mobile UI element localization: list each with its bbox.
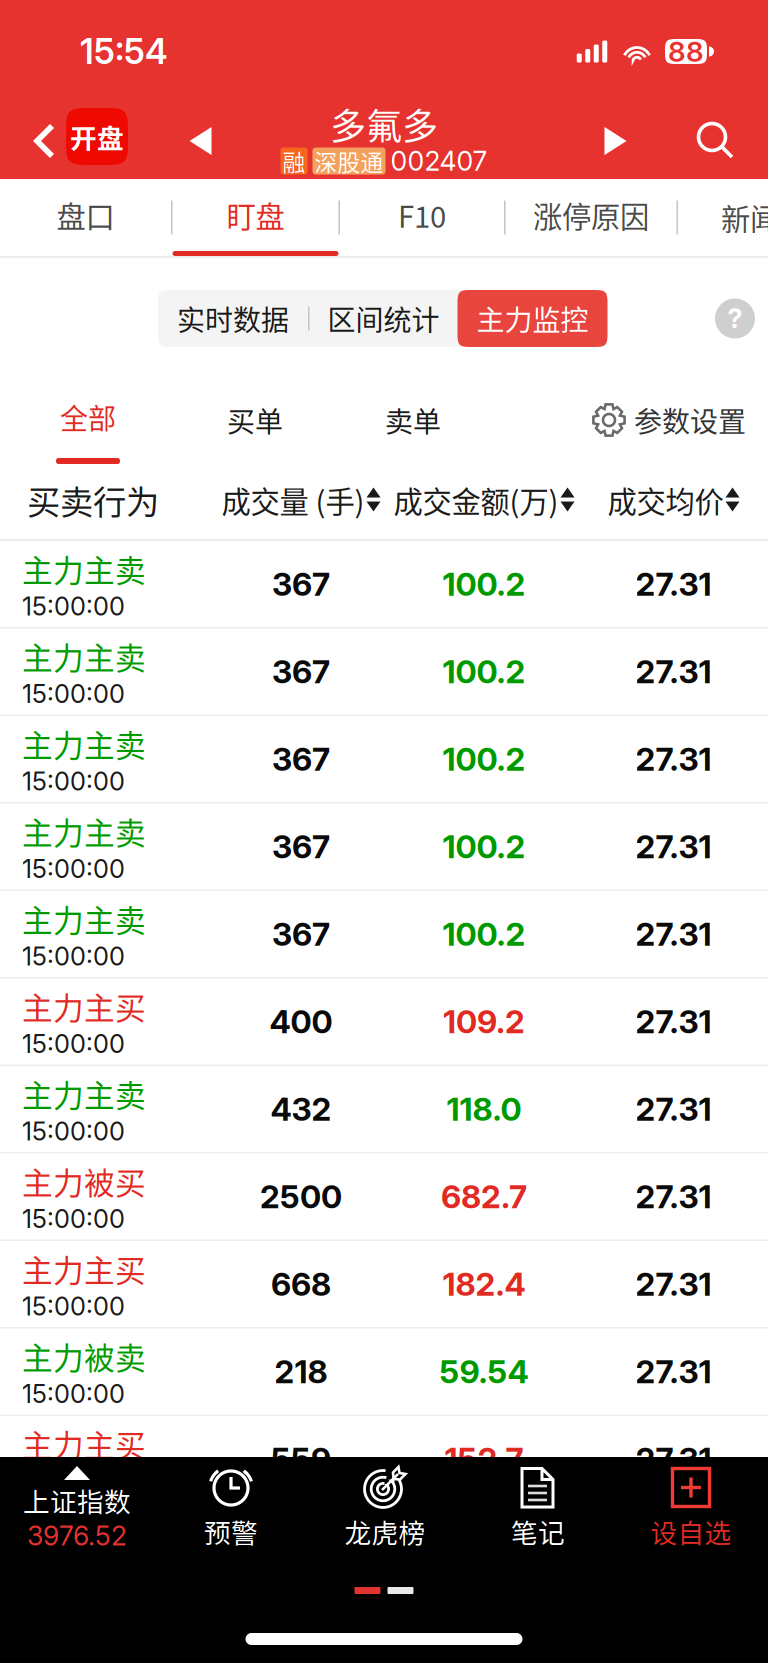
staticText: 15:00:00 xyxy=(22,678,125,709)
button[interactable]: 参数设置 xyxy=(592,376,768,464)
staticText: 龙虎榜 xyxy=(344,1512,425,1551)
button[interactable]: 新闻 xyxy=(667,179,768,256)
button[interactable]: 笔记 xyxy=(462,1465,614,1561)
staticText: 27.31 xyxy=(635,915,711,953)
button[interactable]: 卖单 xyxy=(334,376,492,464)
staticText: 668 xyxy=(271,1265,331,1303)
staticText: 盯盘 xyxy=(226,194,284,236)
staticText: 主力被买 xyxy=(22,1159,146,1203)
staticText: 682.7 xyxy=(441,1177,527,1216)
staticText: 367 xyxy=(272,827,330,866)
button[interactable]: 主力被买 xyxy=(0,1153,768,1241)
staticText: 主力主买 xyxy=(22,1421,146,1466)
staticText: 15:00:00 xyxy=(22,1116,125,1147)
button[interactable]: 主力主买 xyxy=(0,1416,768,1503)
staticText: 27.31 xyxy=(635,565,711,603)
staticText: 367 xyxy=(272,652,330,691)
button[interactable]: 主力主卖 xyxy=(0,541,768,628)
staticText: 118.0 xyxy=(446,1090,521,1128)
staticText: 买单 xyxy=(227,400,283,440)
button[interactable]: 主力监控 xyxy=(457,290,607,347)
button[interactable]: 区间统计 xyxy=(309,290,457,347)
button[interactable]: 主力主卖 xyxy=(0,716,768,803)
button[interactable]: 盯盘 xyxy=(172,179,338,256)
staticText: 主力监控 xyxy=(476,298,588,339)
staticText: 15:00:00 xyxy=(22,1291,125,1322)
button[interactable]: Back xyxy=(20,101,66,181)
staticText: 主力主卖 xyxy=(22,896,146,941)
staticText: 涨停原因 xyxy=(533,194,649,236)
staticText: 卖单 xyxy=(385,400,441,440)
staticText: 深股通 xyxy=(314,145,383,177)
staticText: 15:00:00 xyxy=(22,766,125,797)
staticText: 100.2 xyxy=(442,827,525,866)
button[interactable]: 成交量 (手) xyxy=(213,463,389,537)
button[interactable]: 全部 xyxy=(0,376,176,464)
button[interactable]: F10 xyxy=(340,179,504,256)
staticText: 15:00:00 xyxy=(22,1028,125,1059)
staticText: 15:00:00 xyxy=(22,853,125,884)
button[interactable]: 成交金额(万) xyxy=(389,463,579,537)
button[interactable]: 涨停原因 xyxy=(505,179,676,256)
staticText: ? xyxy=(727,302,742,335)
staticText: 15:54 xyxy=(80,30,168,72)
staticText: F10 xyxy=(398,194,446,236)
staticText: 367 xyxy=(272,915,330,953)
staticText: 参数设置 xyxy=(634,400,746,440)
staticText: 432 xyxy=(270,1090,331,1128)
staticText: 主力主卖 xyxy=(22,721,146,766)
staticText: 182.4 xyxy=(442,1265,525,1303)
staticText: 100.2 xyxy=(442,915,525,953)
button[interactable]: 主力主卖 xyxy=(0,803,768,891)
staticText: 上证指数 xyxy=(23,1481,131,1520)
staticText: 400 xyxy=(269,1002,332,1041)
button[interactable]: Previous stock xyxy=(171,101,229,181)
staticText: 设自选 xyxy=(650,1512,731,1551)
staticText: 主力主卖 xyxy=(22,1071,146,1116)
staticText: 15:00:00 xyxy=(22,1378,125,1409)
staticText: 100.2 xyxy=(442,740,525,778)
staticText: 88 xyxy=(668,35,704,68)
button[interactable]: 成交均价 xyxy=(579,463,768,537)
staticText: 3976.52 xyxy=(27,1520,127,1552)
button[interactable]: 主力主卖 xyxy=(0,628,768,716)
button[interactable]: 龙虎榜 xyxy=(308,1465,462,1561)
button[interactable]: 盘口 xyxy=(0,179,171,256)
button[interactable]: 实时数据 xyxy=(158,290,308,347)
button[interactable]: 主力主卖 xyxy=(0,891,768,978)
staticText: 27.31 xyxy=(635,1090,711,1128)
button[interactable]: 买单 xyxy=(176,376,334,464)
button[interactable]: 主力主卖 xyxy=(0,1066,768,1153)
staticText: 15:00:00 xyxy=(22,591,125,622)
staticText: 主力主卖 xyxy=(22,809,146,853)
button[interactable]: 主力主买 xyxy=(0,1241,768,1328)
button[interactable]: 上证指数 xyxy=(0,1465,154,1561)
staticText: 主力主卖 xyxy=(22,634,146,678)
staticText: 主力主买 xyxy=(22,984,146,1028)
button[interactable]: 预警 xyxy=(154,1465,308,1561)
staticText: 区间统计 xyxy=(327,298,439,339)
button[interactable]: 主力主买 xyxy=(0,978,768,1066)
staticText: 笔记 xyxy=(511,1512,565,1551)
staticText: 27.31 xyxy=(635,827,711,866)
staticText: 开盘 xyxy=(70,117,124,156)
staticText: 002407 xyxy=(390,145,487,177)
staticText: 融 xyxy=(282,145,305,177)
button[interactable]: 主力被卖 xyxy=(0,1328,768,1416)
staticText: 15:00:00 xyxy=(22,1203,125,1234)
button[interactable]: Search xyxy=(688,101,744,181)
staticText: 59.54 xyxy=(439,1352,528,1391)
staticText: 2500 xyxy=(260,1177,342,1216)
staticText: 109.2 xyxy=(443,1002,525,1041)
staticText: 27.31 xyxy=(635,1440,711,1478)
staticText: 367 xyxy=(272,740,330,778)
staticText: 成交量 (手) xyxy=(221,479,364,521)
button[interactable]: 开盘 xyxy=(66,108,128,174)
staticText: 100.2 xyxy=(442,652,525,691)
staticText: 27.31 xyxy=(635,1265,711,1303)
button[interactable]: 设自选 xyxy=(614,1465,768,1561)
staticText: 实时数据 xyxy=(177,298,289,339)
button[interactable]: Next stock xyxy=(586,101,644,181)
button[interactable]: Help xyxy=(715,298,755,338)
staticText: 盘口 xyxy=(56,194,114,236)
